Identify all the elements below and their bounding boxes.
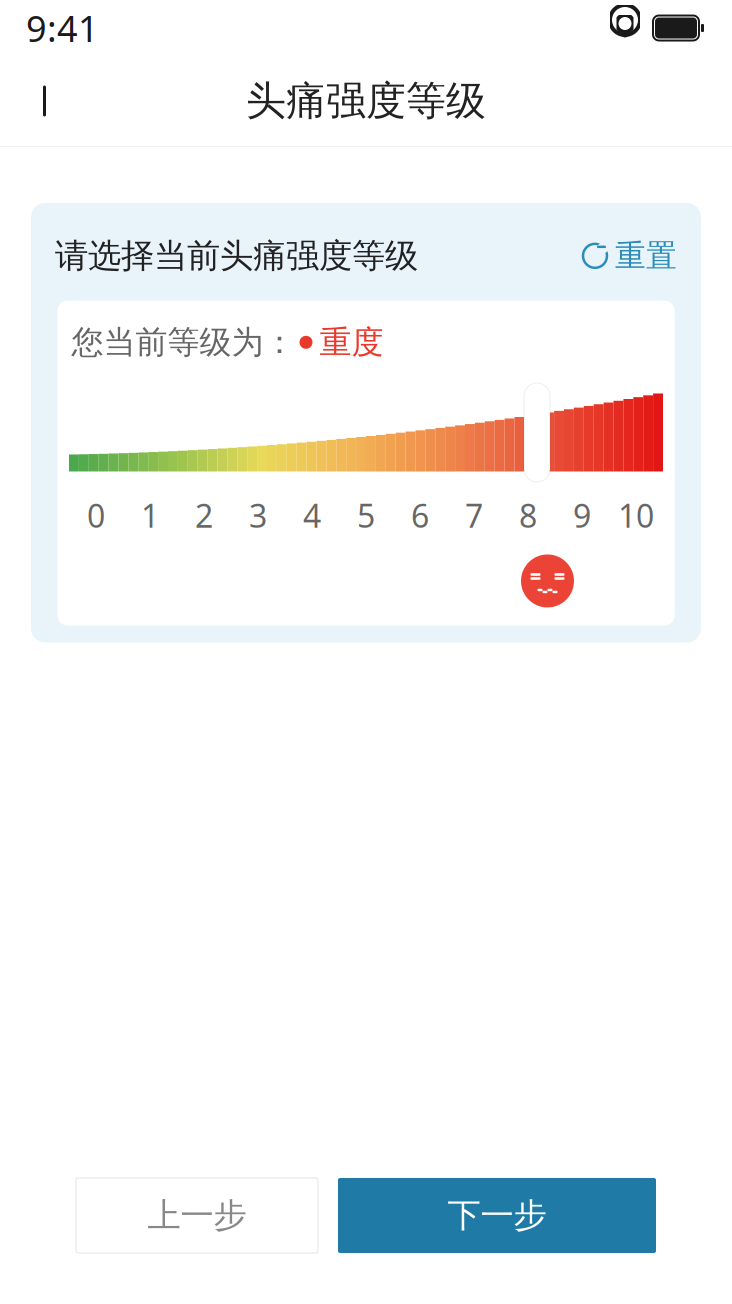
staticText: 0 <box>87 494 105 536</box>
staticText: 请选择当前头痛强度等级 <box>55 235 418 276</box>
staticText: 重度 <box>319 323 383 362</box>
staticText: 重置 <box>615 237 677 275</box>
staticText: 4 <box>303 494 321 536</box>
button[interactable]: 下一步 <box>338 1178 656 1253</box>
staticText: 头痛强度等级 <box>246 76 486 125</box>
button[interactable]: 重置 <box>580 231 679 281</box>
button[interactable]: 返回 <box>16 70 78 132</box>
staticText: 2 <box>195 494 213 536</box>
staticText: 7 <box>465 494 483 536</box>
staticText: 您当前等级为： <box>71 323 295 362</box>
staticText: 3 <box>249 494 267 536</box>
staticText: 下一步 <box>447 1195 546 1236</box>
staticText: 5 <box>357 494 375 536</box>
staticText: 6 <box>411 494 429 536</box>
staticText: 上一步 <box>147 1195 246 1236</box>
button[interactable]: 上一步 <box>76 1178 318 1253</box>
staticText: 1 <box>141 494 159 536</box>
staticText: 9:41 <box>26 4 99 52</box>
staticText: 8 <box>519 494 537 536</box>
staticText: 9 <box>573 494 591 536</box>
staticText: 10 <box>618 494 654 536</box>
